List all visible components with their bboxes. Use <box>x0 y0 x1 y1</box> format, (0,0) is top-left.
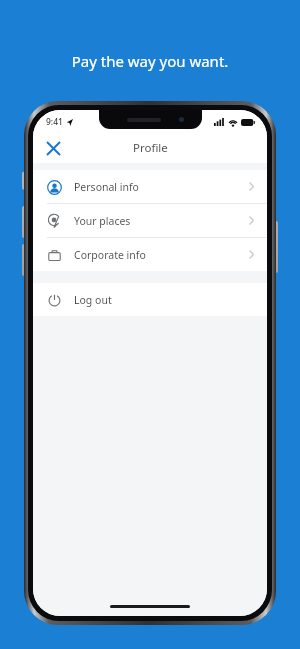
button[interactable]: Your places <box>33 204 267 237</box>
staticText: 9:41 <box>46 116 63 128</box>
staticText: Personal info <box>74 180 139 194</box>
staticText: Profile <box>133 140 168 156</box>
staticText: Corporate info <box>74 248 146 262</box>
button[interactable]: Close <box>39 134 67 162</box>
staticText: Log out <box>74 293 112 307</box>
button[interactable]: Personal info <box>33 170 267 203</box>
staticText: Pay the way you want. <box>0 51 300 71</box>
button[interactable]: Corporate info <box>33 238 267 271</box>
button[interactable]: Log out <box>33 283 267 316</box>
staticText: Your places <box>74 214 131 228</box>
